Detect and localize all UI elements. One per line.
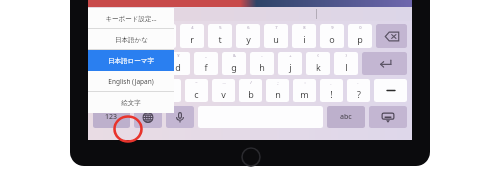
button[interactable]: キーボード設定… [88, 8, 174, 29]
staticText: 6 [247, 25, 250, 30]
button[interactable]: 5 [208, 24, 232, 48]
button[interactable]: Change language [134, 106, 162, 128]
button[interactable]: 4 [180, 24, 204, 48]
staticText: o [329, 33, 335, 45]
button[interactable]: abc [327, 106, 365, 128]
staticText: r [190, 33, 194, 45]
staticText: … [222, 80, 226, 85]
staticText: # [148, 53, 151, 58]
button[interactable]: Voice input [166, 106, 194, 128]
staticText: 123 [105, 112, 118, 122]
staticText: ¥ [177, 53, 180, 58]
staticText: 9 [331, 25, 334, 30]
button[interactable]: : [293, 79, 316, 102]
staticText: ) [345, 53, 347, 58]
staticText: i [303, 33, 306, 45]
button[interactable]: 2 [122, 24, 147, 48]
staticText: 7 [275, 25, 278, 30]
button[interactable]: 7 [264, 24, 288, 48]
button[interactable]: & [222, 52, 246, 75]
staticText: s [147, 61, 152, 73]
staticText: 絵文字 [121, 99, 141, 107]
staticText: 3 [162, 25, 165, 30]
button[interactable]: English (Japan) [88, 71, 174, 92]
button[interactable]: + [278, 52, 302, 75]
staticText: 日本語かな [115, 36, 148, 44]
button[interactable]: ~ [185, 79, 208, 102]
button[interactable]: Shift [93, 79, 127, 102]
staticText: l [345, 61, 348, 73]
button[interactable]: ) [334, 52, 358, 75]
button[interactable]: 、 [320, 79, 343, 102]
button[interactable]: 1 [93, 24, 118, 48]
button[interactable]: 日本語ローマ字 [88, 50, 174, 71]
staticText: - [261, 53, 263, 58]
button[interactable]: 0 [348, 24, 372, 48]
staticText: ( [317, 53, 319, 58]
button[interactable]: … [212, 79, 235, 102]
staticText: z [140, 88, 145, 100]
staticText: t [218, 33, 222, 45]
button[interactable]: - [250, 52, 274, 75]
staticText: ~ [195, 80, 198, 85]
staticText: abc [340, 112, 352, 122]
staticText: d [175, 61, 181, 73]
button[interactable]: 9 [320, 24, 344, 48]
button[interactable]: Delete [376, 24, 407, 48]
button[interactable]: 8 [292, 24, 316, 48]
staticText: a [118, 61, 124, 73]
staticText: ! [330, 88, 333, 100]
staticText: ? [357, 88, 361, 100]
button[interactable]: Hyphen [374, 79, 407, 102]
staticText: u [273, 33, 279, 45]
staticText: 1 [104, 25, 107, 30]
button[interactable]: Hide keyboard [369, 106, 407, 128]
button[interactable]: 絵文字 [88, 92, 174, 113]
staticText: g [231, 61, 237, 73]
button[interactable]: Enter [362, 52, 407, 75]
staticText: English (Japan) [108, 77, 154, 86]
button[interactable]: 日本語かな [88, 29, 174, 50]
button[interactable]: ( [306, 52, 330, 75]
button[interactable]: # [137, 52, 162, 75]
staticText: y [246, 33, 251, 45]
staticText: @ [119, 53, 123, 58]
staticText: * [141, 80, 144, 85]
staticText: 8 [303, 25, 306, 30]
staticText: j [289, 61, 292, 73]
staticText: 日本語ローマ字 [108, 57, 154, 65]
staticText: h [259, 61, 265, 73]
staticText: ; [277, 80, 279, 85]
button[interactable]: 6 [236, 24, 260, 48]
staticText: c [194, 88, 199, 100]
staticText: p [357, 33, 363, 45]
staticText: v [221, 88, 226, 100]
staticText: 4 [191, 25, 194, 30]
button[interactable]: @ [108, 52, 133, 75]
staticText: f [204, 61, 208, 73]
button[interactable]: _ [194, 52, 218, 75]
button[interactable]: 。 [347, 79, 370, 102]
button[interactable]: 123 [93, 106, 130, 128]
staticText: / [250, 80, 252, 85]
staticText: 。 [357, 80, 361, 85]
button[interactable]: 3 [151, 24, 176, 48]
button[interactable]: * [131, 79, 154, 102]
staticText: 、 [330, 80, 334, 85]
button[interactable]: ; [266, 79, 289, 102]
button[interactable]: ¥ [166, 52, 190, 75]
staticText: 5 [219, 25, 222, 30]
button[interactable]: " [158, 79, 181, 102]
staticText: b [248, 88, 254, 100]
staticText: + [289, 53, 292, 58]
staticText: w [131, 33, 139, 45]
other: Home [241, 147, 261, 167]
button[interactable]: / [239, 79, 262, 102]
staticText: 0 [359, 25, 362, 30]
staticText: & [233, 53, 236, 58]
staticText: n [275, 88, 281, 100]
